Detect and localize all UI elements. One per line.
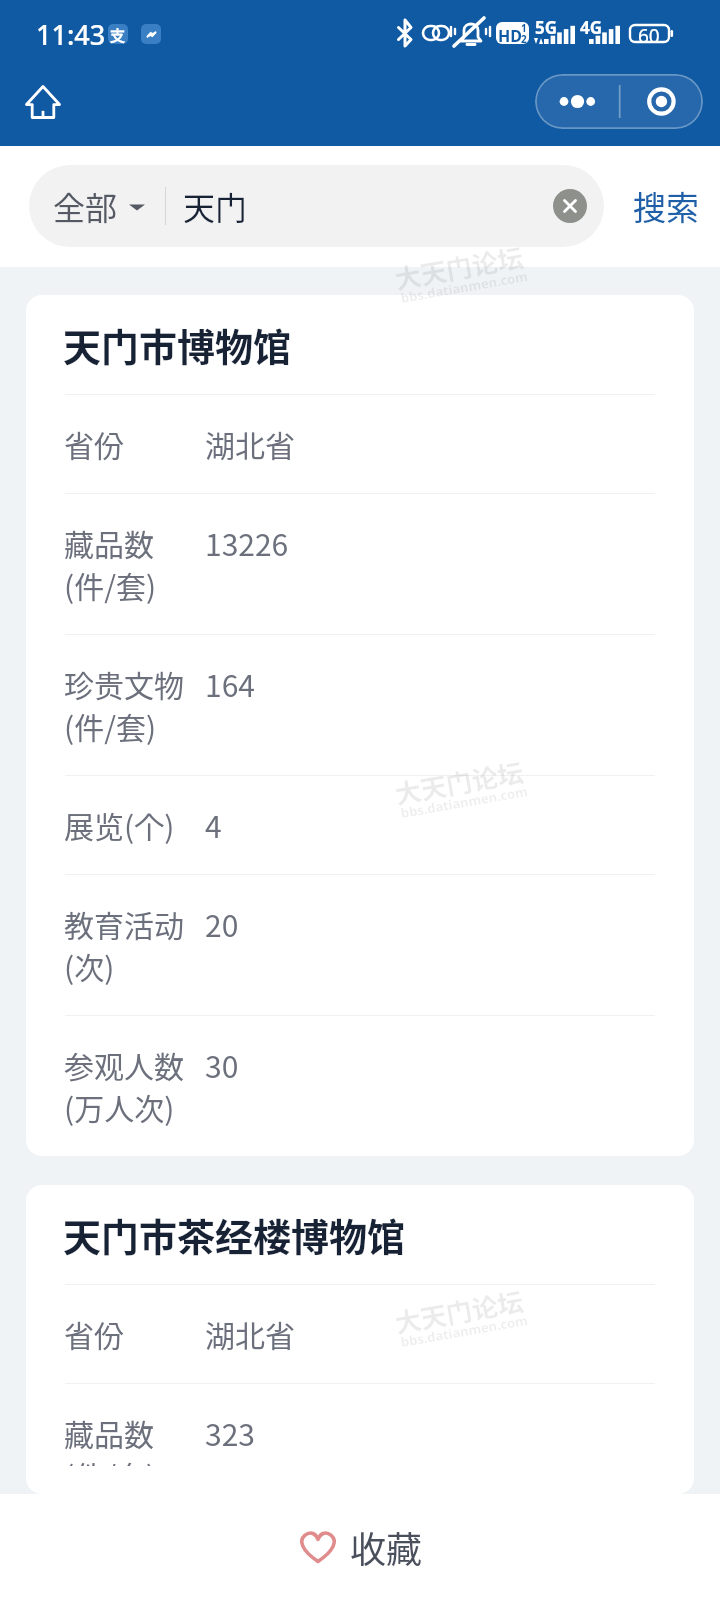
staticText: 4G [580, 16, 603, 39]
staticText: 湖北省 [205, 422, 295, 465]
staticText: 搜索 [633, 182, 699, 230]
staticText: 珍贵文物 (件/套) [64, 662, 205, 747]
staticText: 1 [521, 21, 527, 35]
staticText: 天门 [183, 183, 248, 229]
staticText: 教育活动 (次) [64, 902, 205, 987]
button[interactable]: Clear [553, 189, 587, 223]
staticText: 11:43 [36, 16, 106, 53]
staticText: 湖北省 [205, 1312, 295, 1355]
staticText: 省份 [64, 1312, 205, 1355]
staticText: bbs.datianmen.com [399, 267, 530, 307]
staticText: 大天门论坛 [392, 237, 527, 297]
staticText: 4 [205, 803, 222, 846]
staticText: bbs.datianmen.com [399, 782, 530, 822]
button[interactable]: 天门市茶经楼博物馆 [26, 1185, 694, 1494]
staticText: 30 [205, 1043, 239, 1086]
staticText: 参观人数 (万人次) [64, 1043, 205, 1128]
staticText: 2 [521, 32, 527, 46]
staticText: 60 [638, 23, 660, 49]
button[interactable]: Home [11, 70, 75, 134]
staticText: 藏品数 (件/套) [64, 521, 205, 606]
button[interactable]: 天门市博物馆 [26, 295, 694, 1156]
staticText: 藏品数 (件/套) [64, 1411, 205, 1466]
staticText: 大天门论坛 [392, 752, 527, 812]
staticText: 支 [110, 24, 126, 44]
staticText: 大天门论坛 [392, 1281, 527, 1341]
button[interactable]: More options [535, 74, 703, 129]
staticText: 13226 [205, 521, 289, 564]
staticText: 20 [205, 902, 239, 945]
button[interactable]: 收藏 [278, 1513, 443, 1581]
staticText: 展览(个) [64, 803, 205, 846]
staticText: 全部 [53, 183, 118, 229]
staticText: 天门市茶经楼博物馆 [63, 1207, 406, 1262]
staticText: bbs.datianmen.com [399, 1311, 530, 1351]
staticText: 收藏 [350, 1521, 423, 1573]
staticText: 5G [535, 16, 558, 39]
staticText: HD [498, 25, 522, 47]
staticText: 天门市博物馆 [63, 317, 292, 372]
button[interactable]: 全部 [29, 165, 604, 247]
staticText: 省份 [64, 422, 205, 465]
staticText: 164 [205, 662, 255, 705]
staticText: 323 [205, 1411, 255, 1454]
button[interactable]: 搜索 [633, 165, 699, 247]
